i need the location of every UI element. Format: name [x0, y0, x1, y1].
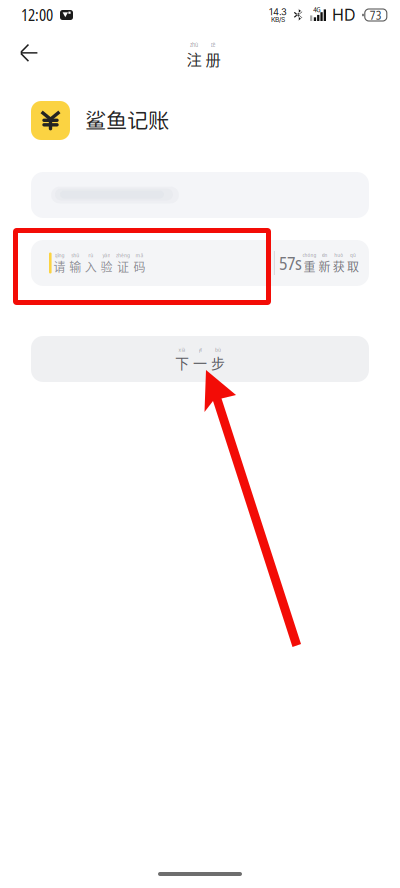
staticText: 获	[333, 258, 345, 275]
staticText: 重	[303, 258, 315, 275]
staticText: zhèng	[116, 251, 130, 259]
staticText: 一	[193, 352, 207, 373]
staticText: 12:00	[21, 5, 53, 25]
staticText: 注	[186, 48, 201, 70]
staticText: 入	[85, 258, 97, 275]
staticText: qǔ	[350, 251, 356, 259]
staticText: 取	[347, 258, 359, 275]
staticText: shū	[71, 251, 79, 259]
button[interactable]: xià	[31, 336, 369, 382]
staticText: qǐng	[55, 251, 65, 259]
staticText: cè	[210, 40, 215, 49]
staticText: 73	[370, 7, 382, 23]
staticText: 下	[175, 352, 189, 373]
button[interactable]: 57s	[274, 240, 369, 286]
staticText: 新	[319, 258, 331, 275]
staticText: HD	[332, 5, 356, 25]
staticText: 码	[134, 258, 146, 275]
staticText: KB/S	[271, 16, 285, 24]
staticText: 册	[205, 48, 220, 70]
staticText: chóng	[302, 251, 316, 259]
staticText: huò	[334, 251, 343, 259]
staticText: yàn	[102, 251, 110, 259]
button[interactable]: Back	[7, 33, 51, 73]
staticText: xīn	[322, 251, 328, 259]
staticText: 4G	[313, 4, 320, 14]
staticText: 验	[100, 258, 112, 275]
staticText: xià	[178, 345, 185, 353]
staticText: 请	[54, 258, 66, 275]
staticText: bù	[215, 345, 221, 353]
staticText: mǎ	[136, 251, 144, 259]
staticText: 鲨鱼记账	[85, 108, 169, 133]
staticText: rù	[88, 251, 93, 259]
staticText: 输	[69, 258, 81, 275]
staticText: yī	[198, 345, 201, 353]
staticText: 14.3	[269, 6, 287, 18]
staticText: 步	[211, 352, 225, 373]
staticText: 证	[117, 258, 129, 275]
staticText: 57s	[279, 251, 302, 275]
staticText: zhù	[190, 40, 198, 49]
